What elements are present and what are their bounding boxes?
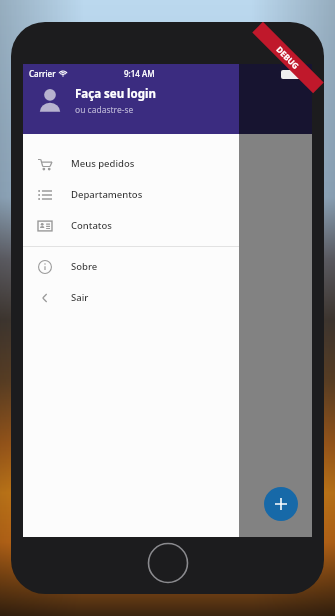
button[interactable]: Meus pedidos xyxy=(23,148,239,179)
staticText: Carrier xyxy=(29,68,56,79)
staticText: 9:14 AM xyxy=(124,68,155,79)
staticText: Faça seu login xyxy=(75,86,156,102)
button[interactable]: Carrier xyxy=(23,64,239,134)
button[interactable]: Sair xyxy=(23,282,239,313)
button[interactable]: Sobre xyxy=(23,251,239,282)
button[interactable]: Adicionar xyxy=(264,487,298,521)
staticText: Contatos xyxy=(71,219,112,232)
staticText: Departamentos xyxy=(71,188,143,201)
staticText: Meus pedidos xyxy=(71,157,135,170)
staticText: ou cadastre-se xyxy=(75,104,134,116)
button[interactable]: Home xyxy=(147,542,189,584)
button[interactable]: Departamentos xyxy=(23,179,239,210)
staticText: DEBUG xyxy=(274,44,302,71)
staticText: Sobre xyxy=(71,260,98,273)
button[interactable]: Contatos xyxy=(23,210,239,241)
staticText: Sair xyxy=(71,291,89,304)
